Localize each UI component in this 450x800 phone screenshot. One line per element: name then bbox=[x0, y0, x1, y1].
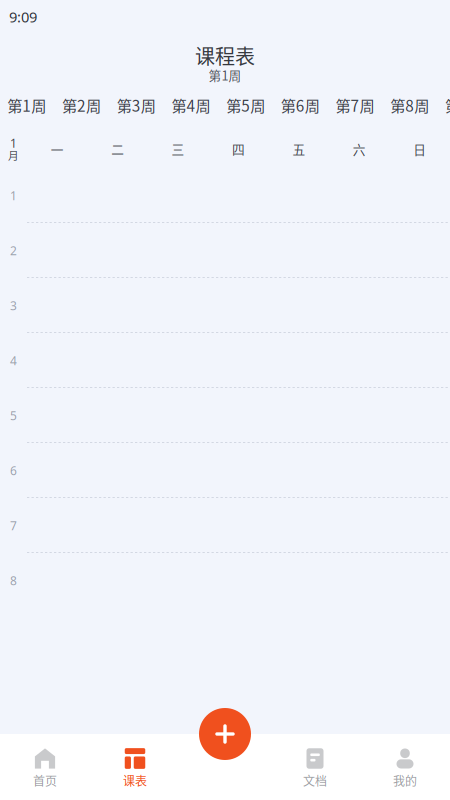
button[interactable]: 首页 bbox=[0, 734, 90, 800]
staticText: 8 bbox=[10, 572, 17, 588]
staticText: 第1周 bbox=[7, 94, 46, 116]
button[interactable]: 第7周 bbox=[328, 95, 382, 115]
staticText: 1 bbox=[10, 135, 17, 151]
staticText: 第5周 bbox=[226, 94, 265, 116]
staticText: 1 bbox=[10, 187, 17, 203]
staticText: 课程表 bbox=[195, 41, 255, 70]
staticText: 第2周 bbox=[62, 94, 101, 116]
staticText: 第3周 bbox=[117, 94, 156, 116]
button[interactable]: 第9周 bbox=[437, 95, 450, 115]
staticText: 7 bbox=[10, 517, 17, 533]
button[interactable]: 第3周 bbox=[109, 95, 164, 115]
button[interactable]: 课表 bbox=[90, 734, 180, 800]
staticText: 三 bbox=[172, 140, 185, 158]
staticText: 3 bbox=[10, 297, 17, 313]
staticText: 第1周 bbox=[208, 66, 241, 84]
button[interactable]: 文档 bbox=[270, 734, 360, 800]
staticText: 第9周 bbox=[445, 94, 450, 116]
staticText: 月 bbox=[8, 147, 19, 163]
button[interactable]: 第4周 bbox=[164, 95, 218, 115]
staticText: 我的 bbox=[393, 772, 417, 789]
staticText: 四 bbox=[232, 140, 245, 158]
staticText: 第7周 bbox=[336, 94, 375, 116]
staticText: 9:09 bbox=[9, 7, 37, 26]
staticText: 第8周 bbox=[390, 94, 429, 116]
staticText: 六 bbox=[353, 140, 366, 158]
staticText: 4 bbox=[10, 352, 17, 368]
button[interactable]: 第2周 bbox=[54, 95, 109, 115]
staticText: 文档 bbox=[303, 772, 327, 789]
staticText: 第4周 bbox=[171, 94, 210, 116]
button[interactable]: 第8周 bbox=[382, 95, 437, 115]
button[interactable]: 第5周 bbox=[218, 95, 273, 115]
staticText: 2 bbox=[10, 242, 17, 258]
staticText: 日 bbox=[413, 140, 426, 158]
button[interactable]: 第1周 bbox=[0, 95, 54, 115]
staticText: 一 bbox=[51, 140, 64, 158]
staticText: 课表 bbox=[123, 772, 147, 789]
staticText: 第6周 bbox=[281, 94, 320, 116]
staticText: 二 bbox=[111, 140, 124, 158]
button[interactable]: 我的 bbox=[360, 734, 450, 800]
button[interactable]: 第6周 bbox=[273, 95, 328, 115]
staticText: 首页 bbox=[33, 772, 57, 789]
staticText: 6 bbox=[10, 462, 17, 478]
staticText: 5 bbox=[10, 407, 17, 423]
button[interactable]: 添加课程 bbox=[199, 708, 251, 760]
staticText: 五 bbox=[292, 140, 305, 158]
